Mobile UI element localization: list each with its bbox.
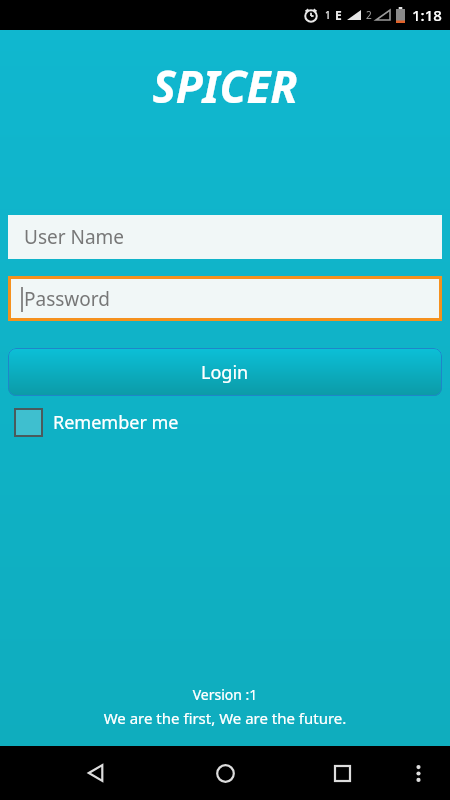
staticText: User Name xyxy=(24,224,125,250)
button[interactable]: Back xyxy=(76,753,116,793)
staticText: 1 xyxy=(325,8,331,22)
button[interactable]: Remember me xyxy=(14,408,179,437)
button[interactable]: Home xyxy=(203,751,247,795)
button[interactable]: More options xyxy=(400,755,436,791)
staticText: SPICER xyxy=(0,56,450,116)
staticText: Login xyxy=(201,360,249,385)
staticText: We are the first, We are the future. xyxy=(0,708,450,728)
button[interactable]: Login xyxy=(8,348,442,396)
button[interactable]: Recent apps xyxy=(322,753,362,793)
staticText: 2 xyxy=(366,8,372,22)
staticText: E xyxy=(335,7,342,23)
staticText: Version :1 xyxy=(0,685,450,704)
button[interactable]: User Name xyxy=(8,215,442,259)
staticText: Remember me xyxy=(53,410,179,435)
staticText: 1:18 xyxy=(412,5,442,25)
staticText: Password xyxy=(24,286,110,312)
button[interactable]: Password xyxy=(11,279,439,318)
